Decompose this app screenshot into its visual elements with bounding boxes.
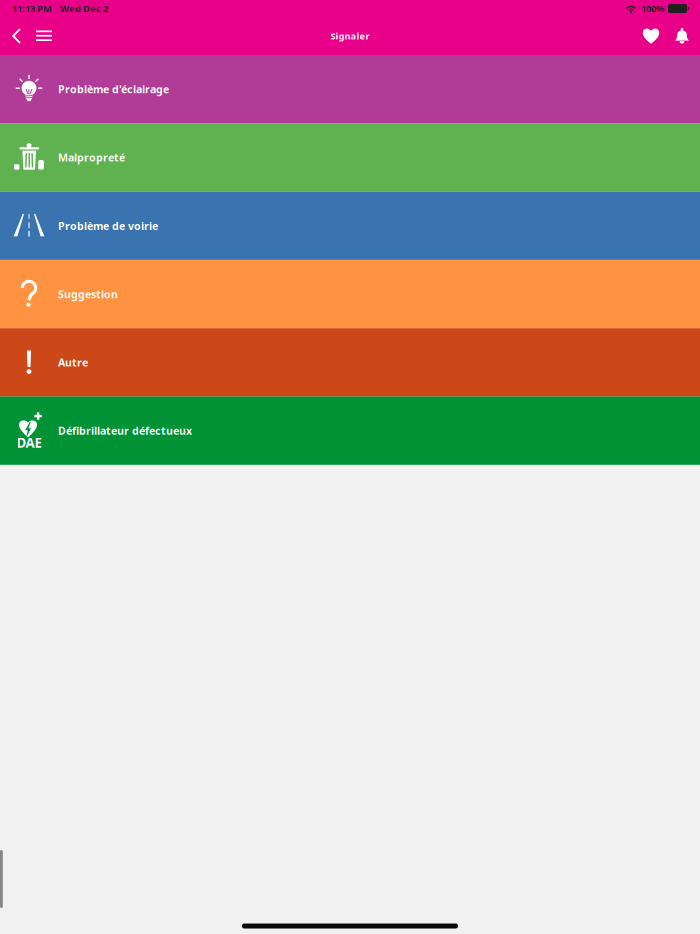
button[interactable]: Problème de voirie [0,192,700,260]
button[interactable]: Favorites [635,17,667,55]
staticText: Malpropreté [58,150,125,165]
button[interactable]: Malpropreté [0,123,700,192]
button[interactable]: DAE [0,396,700,465]
button[interactable]: Autre [0,328,700,396]
button[interactable]: Notifications [667,17,697,55]
staticText: Suggestion [58,287,118,301]
staticText: Wed Dec 2 [60,2,108,15]
staticText: Problème d'éclairage [58,82,169,96]
staticText: 11:13 PM [12,2,52,15]
staticText: Défibrillateur défectueux [58,424,192,438]
button[interactable]: Problème d'éclairage [0,55,700,123]
button[interactable]: Suggestion [0,260,700,328]
staticText: 100% [641,2,664,15]
button[interactable]: Back [3,17,31,55]
button[interactable]: Menu [31,17,57,55]
staticText: Signaler [330,30,369,42]
staticText: Autre [58,355,88,369]
staticText: Problème de voirie [58,219,158,233]
staticText: DAE [16,434,41,451]
